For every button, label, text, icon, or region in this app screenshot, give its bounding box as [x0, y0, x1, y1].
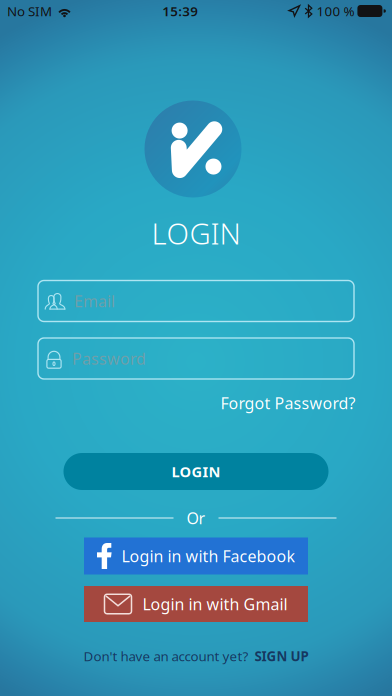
button[interactable]: Login in with Gmail [84, 586, 308, 622]
staticText: No SIM [7, 2, 52, 20]
staticText: LOGIN [151, 213, 240, 252]
staticText: 100 % [316, 2, 354, 20]
staticText: Email [74, 290, 115, 312]
staticText: Login in with Facebook [121, 545, 295, 567]
staticText: Don't have an account yet? [83, 647, 248, 665]
button[interactable]: Password [38, 338, 354, 379]
button[interactable]: Login in with Facebook [84, 537, 308, 574]
staticText: SIGN UP [254, 647, 308, 665]
staticText: LOGIN [171, 462, 220, 481]
staticText: 15:39 [162, 2, 198, 20]
button[interactable]: Email [38, 280, 354, 321]
staticText: Forgot Password? [220, 392, 355, 414]
button[interactable]: LOGIN [63, 453, 328, 490]
button[interactable]: SIGN UP [254, 647, 308, 665]
staticText: Login in with Gmail [142, 593, 287, 615]
staticText: Password [72, 348, 146, 369]
button[interactable]: Forgot Password? [216, 388, 359, 418]
staticText: Or [186, 507, 205, 529]
